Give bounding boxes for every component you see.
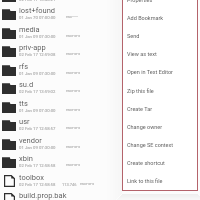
button[interactable]: toolbox bbox=[0, 171, 200, 189]
staticText: Add Bookmark bbox=[127, 15, 164, 21]
staticText: 02 Feb 17 12:59:08 bbox=[19, 52, 56, 57]
staticText: rwxr-xr-x bbox=[66, 89, 81, 93]
staticText: 01 Jan 09 07:30:00 bbox=[19, 71, 56, 76]
staticText: 02 Feb 17 12:58:58 bbox=[19, 163, 56, 168]
button[interactable]: build.prop.bak bbox=[0, 189, 200, 200]
staticText: Create shortcut bbox=[127, 160, 165, 166]
staticText: 02 Feb 17 13:40:21 bbox=[19, 0, 56, 2]
button[interactable]: Change owner bbox=[122, 118, 198, 136]
staticText: 01 Jan 09 07:30:00 bbox=[19, 108, 56, 113]
staticText: media bbox=[19, 25, 40, 34]
button[interactable]: Link to this file bbox=[122, 172, 198, 190]
staticText: 02 Feb 17 13:59:02 bbox=[19, 89, 56, 94]
staticText: rwxr-xr-x bbox=[66, 126, 81, 130]
staticText: 01 Jan 70 07:00:00 bbox=[19, 15, 56, 20]
staticText: tts bbox=[19, 99, 28, 108]
staticText: su.d bbox=[19, 80, 34, 89]
staticText: lost+found bbox=[19, 6, 56, 15]
button[interactable]: priv-app bbox=[0, 41, 200, 59]
staticText: Properties bbox=[127, 0, 153, 3]
staticText: rwxr-xr-x bbox=[66, 145, 81, 149]
staticText: 01 Jan 09 07:30:00 bbox=[19, 145, 56, 150]
staticText: toolbox bbox=[19, 173, 44, 182]
staticText: xbin bbox=[19, 154, 33, 163]
staticText: 113.746 bbox=[62, 182, 77, 187]
button[interactable]: Zip this file bbox=[122, 82, 198, 100]
button[interactable]: lib bbox=[0, 0, 200, 4]
staticText: 02 Feb 17 12:58:58 bbox=[19, 182, 56, 187]
staticText: rwx------ bbox=[66, 15, 78, 19]
button[interactable]: View as text bbox=[122, 45, 198, 63]
staticText: Change owner bbox=[127, 124, 163, 130]
staticText: build.prop.bak bbox=[19, 191, 67, 200]
staticText: rfs bbox=[19, 62, 29, 71]
staticText: rwxr-xr-x bbox=[80, 182, 95, 186]
staticText: Open in Text Editor bbox=[127, 69, 173, 75]
staticText: rwxr-xr-x bbox=[66, 163, 81, 167]
button[interactable]: Create Tar bbox=[122, 100, 198, 118]
button[interactable]: lost+found bbox=[0, 4, 200, 22]
staticText: vendor bbox=[19, 136, 42, 145]
staticText: rwxr-xr-x bbox=[66, 108, 81, 112]
staticText: Zip this file bbox=[127, 88, 154, 94]
button[interactable]: su.d bbox=[0, 78, 200, 96]
button[interactable]: Add Bookmark bbox=[122, 9, 198, 27]
staticText: 01 Jan 09 07:30:00 bbox=[19, 34, 56, 39]
button[interactable]: tts bbox=[0, 97, 200, 115]
button[interactable]: Change SE context bbox=[122, 136, 198, 154]
staticText: priv-app bbox=[19, 43, 46, 52]
button[interactable]: Open in Text Editor bbox=[122, 63, 198, 81]
staticText: Send bbox=[127, 33, 140, 39]
button[interactable]: rfs bbox=[0, 60, 200, 78]
button[interactable]: Create shortcut bbox=[122, 154, 198, 172]
staticText: Change SE context bbox=[127, 142, 174, 148]
button[interactable]: xbin bbox=[0, 152, 200, 170]
staticText: 02 Feb 17 12:58:57 bbox=[19, 126, 56, 131]
staticText: rwxr-xr-x bbox=[66, 52, 81, 56]
button[interactable]: media bbox=[0, 23, 200, 41]
button[interactable]: usr bbox=[0, 115, 200, 133]
staticText: Link to this file bbox=[127, 178, 163, 184]
staticText: usr bbox=[19, 117, 30, 126]
button[interactable]: vendor bbox=[0, 134, 200, 152]
staticText: rwxr-xr-x bbox=[66, 71, 81, 75]
staticText: View as text bbox=[127, 51, 157, 57]
button[interactable]: Send bbox=[122, 27, 198, 45]
staticText: Create Tar bbox=[127, 106, 153, 112]
button[interactable]: Properties bbox=[122, 0, 198, 9]
staticText: rwxr-xr-x bbox=[66, 34, 81, 38]
